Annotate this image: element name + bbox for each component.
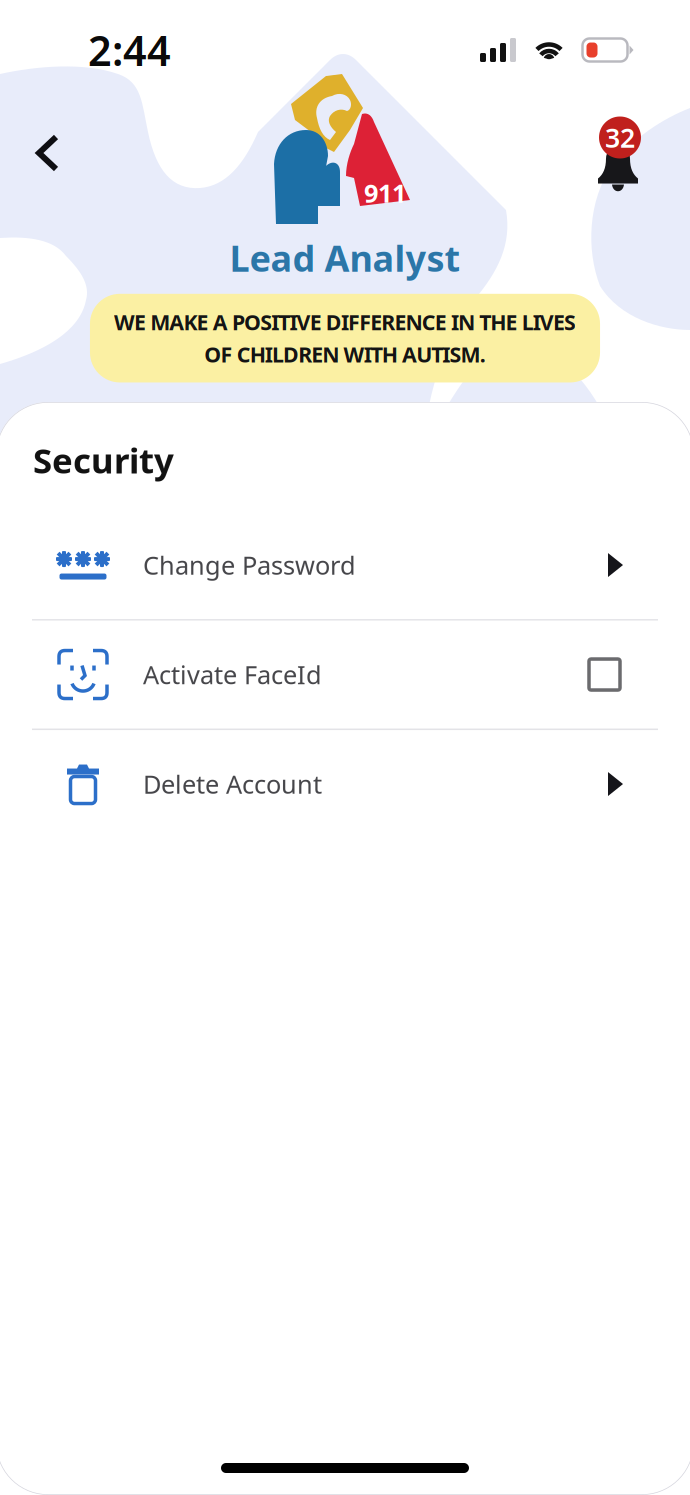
staticText: Lead Analyst	[229, 234, 460, 282]
staticText: WE MAKE A POSITIVE DIFFERENCE IN THE LIV…	[114, 308, 576, 336]
button[interactable]: Change Password	[0, 511, 690, 619]
button[interactable]: Back	[0, 74, 83, 191]
staticText: Delete Account	[143, 767, 322, 801]
button[interactable]: Notifications	[594, 74, 690, 193]
staticText: Activate FaceId	[143, 658, 322, 691]
staticText: 32	[605, 120, 635, 155]
button[interactable]: Activate FaceId	[0, 620, 690, 728]
staticText: Change Password	[143, 548, 356, 582]
staticText: OF CHILDREN WITH AUTISM.	[204, 340, 486, 368]
button[interactable]: Delete Account	[0, 730, 690, 838]
staticText: 911	[364, 176, 406, 210]
staticText: 2:44	[88, 23, 171, 77]
staticText: Security	[33, 437, 174, 483]
